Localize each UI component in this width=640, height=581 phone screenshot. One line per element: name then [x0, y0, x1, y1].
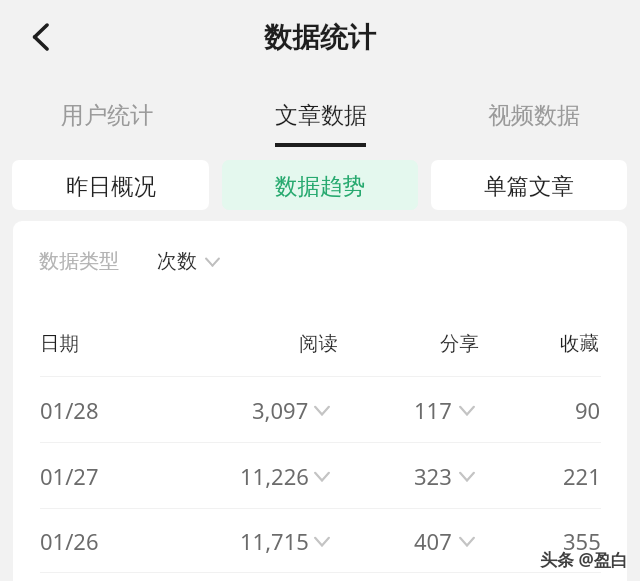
staticText: 01/26	[40, 526, 99, 556]
staticText: 数据类型	[39, 249, 119, 274]
staticText: 头条 @盈白	[540, 548, 628, 571]
staticText: 11,226	[240, 461, 309, 491]
staticText: 221	[563, 461, 601, 491]
button[interactable]: 文章数据	[214, 73, 427, 160]
staticText: 文章数据	[275, 101, 367, 130]
button[interactable]: 视频数据	[427, 73, 640, 160]
button[interactable]: 数据趋势	[222, 160, 418, 210]
staticText: 日期	[40, 331, 79, 356]
staticText: 数据趋势	[275, 172, 365, 200]
button[interactable]: 01/27	[13, 443, 627, 508]
staticText: 单篇文章	[484, 172, 574, 200]
staticText: 3,097	[252, 395, 309, 425]
staticText: 用户统计	[61, 101, 153, 130]
staticText: 90	[575, 395, 601, 425]
button[interactable]: 01/28	[13, 377, 627, 442]
staticText: 117	[414, 395, 452, 425]
staticText: 分享	[440, 331, 479, 356]
staticText: 次数	[157, 249, 197, 274]
staticText: 407	[414, 526, 452, 556]
button[interactable]: 次数	[157, 249, 220, 274]
button[interactable]: Back	[17, 13, 65, 61]
staticText: 数据统计	[264, 20, 376, 55]
button[interactable]: 01/26	[13, 509, 627, 572]
staticText: 阅读	[299, 331, 338, 356]
staticText: 323	[414, 461, 452, 491]
staticText: 视频数据	[488, 101, 580, 130]
button[interactable]: 单篇文章	[431, 160, 627, 210]
staticText: 收藏	[560, 331, 599, 356]
button[interactable]: 用户统计	[0, 73, 214, 160]
staticText: 昨日概况	[66, 172, 156, 200]
staticText: 01/27	[40, 461, 99, 491]
staticText: 11,715	[240, 526, 309, 556]
staticText: 01/28	[40, 395, 99, 425]
button[interactable]: 昨日概况	[12, 160, 209, 210]
staticText: 355	[563, 526, 601, 556]
